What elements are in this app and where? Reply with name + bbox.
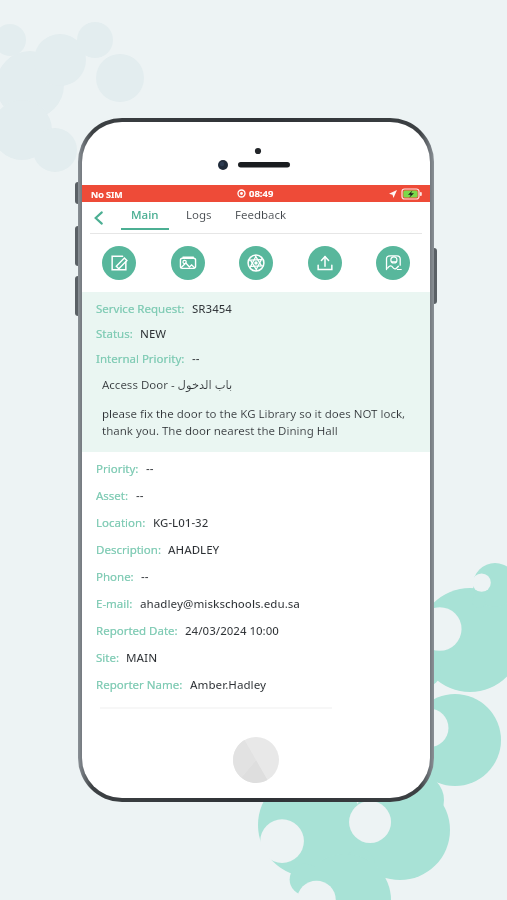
staticText: 24/03/2024 10:00 bbox=[185, 623, 279, 639]
button[interactable]: Attachments bbox=[171, 246, 205, 280]
staticText: Feedback bbox=[235, 207, 287, 223]
button[interactable]: Signature bbox=[376, 246, 410, 280]
button[interactable]: Main bbox=[116, 202, 174, 234]
staticText: -- bbox=[192, 351, 200, 367]
staticText: Priority: bbox=[96, 461, 139, 477]
button[interactable]: Camera bbox=[239, 246, 273, 280]
staticText: ahadley@miskschools.edu.sa bbox=[140, 596, 300, 612]
button[interactable]: Back bbox=[82, 202, 116, 234]
staticText: Location: bbox=[96, 515, 146, 531]
button[interactable]: Feedback bbox=[224, 202, 298, 234]
staticText: SR3454 bbox=[192, 301, 232, 317]
staticText: MAIN bbox=[126, 650, 158, 666]
staticText: -- bbox=[141, 569, 149, 585]
button[interactable]: Upload bbox=[308, 246, 342, 280]
button[interactable]: Logs bbox=[174, 202, 224, 234]
staticText: Status: bbox=[96, 326, 133, 342]
button[interactable]: Edit bbox=[102, 246, 136, 280]
staticText: Amber.Hadley bbox=[190, 677, 267, 693]
staticText: KG-L01-32 bbox=[153, 515, 209, 531]
staticText: Asset: bbox=[96, 488, 129, 504]
staticText: please fix the door to the KG Library so… bbox=[102, 406, 412, 439]
staticText: Site: bbox=[96, 650, 119, 666]
staticText: Phone: bbox=[96, 569, 134, 585]
staticText: E-mail: bbox=[96, 596, 133, 612]
staticText: Main bbox=[131, 207, 159, 223]
staticText: -- bbox=[146, 461, 154, 477]
staticText: No SIM bbox=[91, 188, 123, 200]
staticText: Reporter Name: bbox=[96, 677, 183, 693]
staticText: Description: bbox=[96, 542, 161, 558]
staticText: Reported Date: bbox=[96, 623, 178, 639]
staticText: 08:49 bbox=[249, 187, 274, 200]
staticText: Logs bbox=[186, 207, 212, 223]
staticText: Service Request: bbox=[96, 301, 185, 317]
staticText: Access Door - باب الدخول bbox=[102, 377, 233, 393]
staticText: NEW bbox=[140, 326, 167, 342]
staticText: AHADLEY bbox=[168, 542, 220, 558]
staticText: Internal Priority: bbox=[96, 351, 185, 367]
staticText: -- bbox=[136, 488, 144, 504]
